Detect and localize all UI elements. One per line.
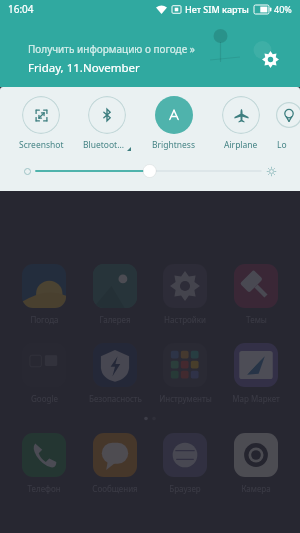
button[interactable]: Безопасность	[82, 343, 148, 404]
staticText: Инструменты	[159, 393, 212, 404]
staticText: Темы	[246, 314, 267, 325]
button[interactable]: Мар Маркет	[223, 343, 289, 404]
button[interactable]: Screenshot	[8, 96, 74, 151]
staticText: Настройки	[164, 314, 206, 325]
button[interactable]: Темы	[223, 264, 289, 325]
staticText: 40%	[274, 3, 292, 15]
staticText: Сообщения	[92, 483, 138, 494]
button[interactable]: Телефон	[11, 433, 77, 494]
button[interactable]	[24, 154, 276, 188]
button[interactable]: Brightness	[140, 96, 207, 151]
staticText: Airplane	[224, 139, 258, 151]
button[interactable]: Location	[276, 96, 300, 134]
staticText: Камера	[241, 483, 271, 494]
staticText: Мар Маркет	[232, 393, 280, 404]
button[interactable]: Галерея	[82, 264, 148, 325]
button[interactable]: Браузер	[152, 433, 218, 494]
staticText: Телефон	[27, 483, 61, 494]
button[interactable]: Камера	[223, 433, 289, 494]
staticText: Screenshot	[19, 139, 64, 151]
button[interactable]: Настройки	[152, 264, 218, 325]
staticText: Безопасность	[89, 393, 142, 404]
staticText: Браузер	[169, 483, 201, 494]
button[interactable]: Airplane	[207, 96, 274, 151]
staticText: Lo	[277, 139, 287, 151]
staticText: Google	[31, 393, 58, 404]
staticText: Погода	[30, 314, 59, 325]
button[interactable]: Получить информацию о погоде »	[28, 42, 250, 76]
button[interactable]: Погода	[11, 264, 77, 325]
button[interactable]: Settings	[250, 39, 290, 79]
staticText: Галерея	[99, 314, 131, 325]
staticText: Нет SIM карты	[185, 3, 249, 15]
staticText: Bluetoot...	[83, 139, 125, 151]
staticText: Получить информацию о погоде »	[28, 42, 195, 56]
button[interactable]: Bluetoot...	[74, 96, 140, 151]
staticText: Brightness	[152, 139, 195, 151]
staticText: 16:04	[8, 2, 34, 16]
button[interactable]: Инструменты	[152, 343, 218, 404]
button[interactable]: Сообщения	[82, 433, 148, 494]
staticText: Friday, 11.November	[28, 60, 140, 76]
